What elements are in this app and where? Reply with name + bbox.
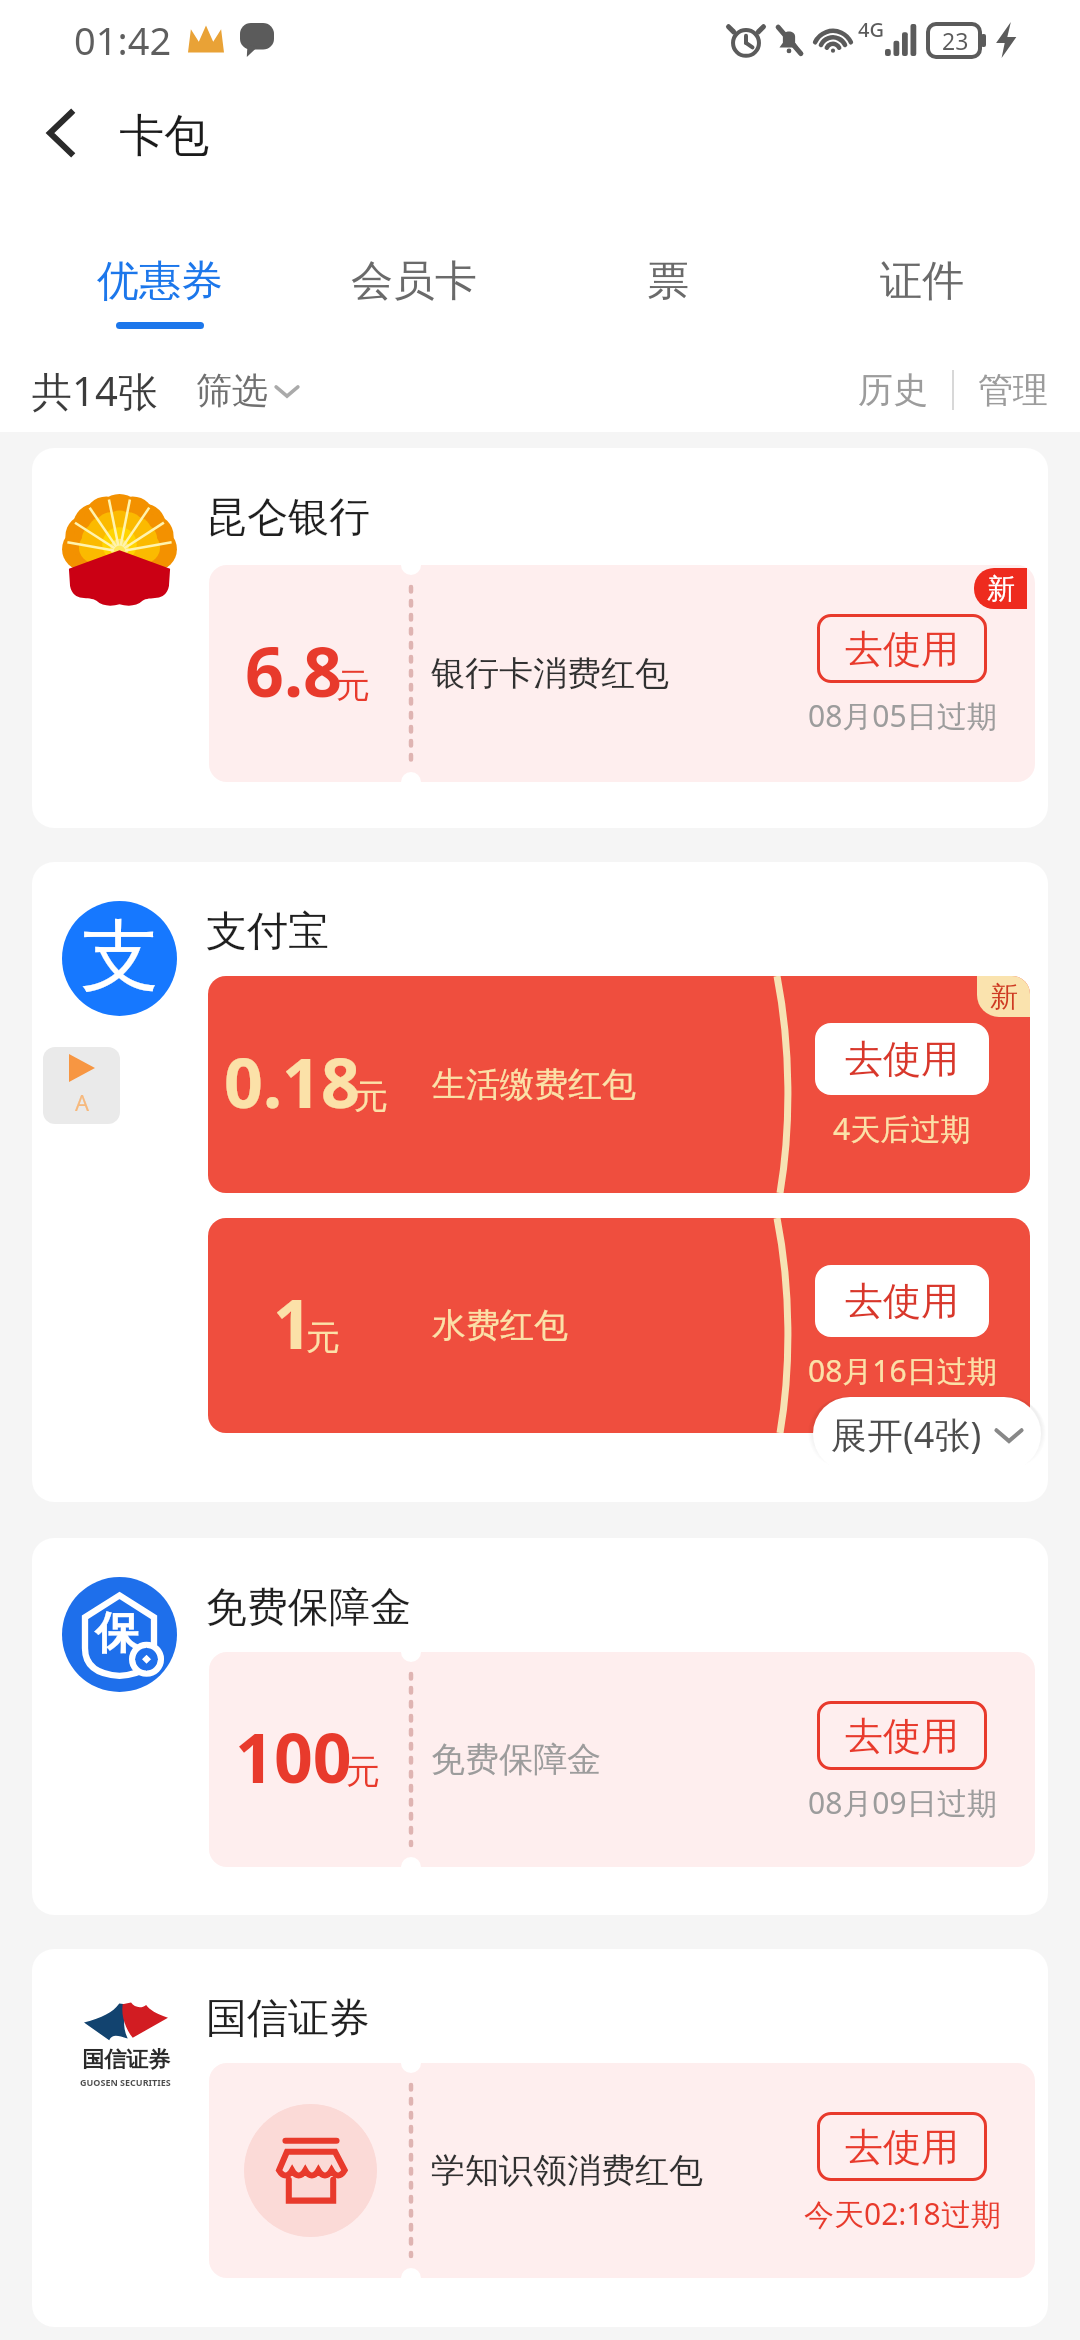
- staticText: 卡包: [119, 108, 209, 165]
- staticText: 管理: [978, 368, 1048, 412]
- button[interactable]: 保: [32, 1538, 1048, 1915]
- button[interactable]: 6.8: [209, 565, 1035, 782]
- button[interactable]: 去使用: [817, 1701, 987, 1770]
- button[interactable]: 筛选: [196, 368, 300, 413]
- staticText: 水费红包: [432, 1304, 568, 1347]
- staticText: 学知识领消费红包: [431, 2149, 703, 2192]
- button[interactable]: Back: [24, 97, 96, 169]
- staticText: 历史: [858, 368, 928, 412]
- staticText: 保: [95, 1606, 139, 1661]
- staticText: 去使用: [845, 1712, 959, 1760]
- staticText: 元: [346, 1750, 380, 1793]
- staticText: 筛选: [196, 368, 268, 413]
- staticText: 今天02:18过期: [804, 2193, 1001, 2234]
- button[interactable]: 管理: [978, 368, 1048, 412]
- staticText: 6.8: [245, 624, 342, 717]
- staticText: 100: [235, 1710, 352, 1803]
- button[interactable]: Accessibility shortcut: [43, 1047, 120, 1124]
- staticText: 生活缴费红包: [432, 1063, 636, 1106]
- staticText: 国信证券: [82, 2046, 170, 2074]
- staticText: 08月16日过期: [808, 1350, 997, 1391]
- staticText: 免费保障金: [431, 1738, 601, 1781]
- staticText: 新: [990, 979, 1018, 1014]
- staticText: 元: [336, 664, 370, 707]
- button[interactable]: 去使用: [817, 614, 987, 683]
- button[interactable]: 历史: [858, 368, 928, 412]
- staticText: 去使用: [845, 625, 959, 673]
- staticText: 元: [354, 1075, 388, 1118]
- staticText: 4G: [858, 16, 884, 43]
- button[interactable]: 昆仑银行: [32, 448, 1048, 828]
- button[interactable]: 去使用: [815, 1265, 989, 1337]
- staticText: 新: [987, 571, 1015, 606]
- staticText: 01:42: [74, 14, 172, 66]
- staticText: 去使用: [845, 2123, 959, 2171]
- staticText: A: [75, 1087, 90, 1117]
- staticText: 银行卡消费红包: [431, 652, 669, 695]
- button[interactable]: 展开(4张): [813, 1397, 1041, 1471]
- button[interactable]: 学知识领消费红包: [209, 2063, 1035, 2278]
- staticText: 08月05日过期: [808, 695, 997, 736]
- staticText: 4天后过期: [833, 1108, 971, 1149]
- staticText: 证件: [880, 255, 964, 308]
- staticText: 支: [81, 908, 159, 1006]
- staticText: 1: [273, 1276, 312, 1369]
- staticText: 优惠券: [97, 255, 223, 308]
- staticText: 共14张: [32, 363, 158, 418]
- button[interactable]: 优惠券: [33, 255, 287, 365]
- staticText: 展开(4张): [831, 1410, 982, 1459]
- staticText: 23: [942, 25, 969, 56]
- button[interactable]: 1: [208, 1218, 1030, 1433]
- button[interactable]: 会员卡: [287, 255, 541, 365]
- button[interactable]: 去使用: [815, 1023, 989, 1095]
- button[interactable]: 证件: [795, 255, 1049, 365]
- button[interactable]: 国信证券: [32, 1949, 1048, 2327]
- staticText: 免费保障金: [206, 1582, 411, 1634]
- button[interactable]: 票: [541, 255, 795, 365]
- staticText: GUOSEN SECURITIES: [80, 2076, 171, 2088]
- staticText: 昆仑银行: [206, 492, 370, 544]
- staticText: 元: [306, 1316, 340, 1359]
- button[interactable]: 0.18: [208, 976, 1030, 1193]
- staticText: 去使用: [845, 1035, 959, 1083]
- staticText: 0.18: [224, 1035, 360, 1128]
- staticText: 08月09日过期: [808, 1782, 997, 1823]
- button[interactable]: 100: [209, 1652, 1035, 1867]
- staticText: 国信证券: [206, 1993, 370, 2045]
- button[interactable]: 去使用: [817, 2112, 987, 2181]
- staticText: 会员卡: [351, 255, 477, 308]
- staticText: 去使用: [845, 1277, 959, 1325]
- staticText: 票: [647, 255, 689, 308]
- staticText: 支付宝: [206, 906, 329, 958]
- button[interactable]: 支: [32, 862, 1048, 1502]
